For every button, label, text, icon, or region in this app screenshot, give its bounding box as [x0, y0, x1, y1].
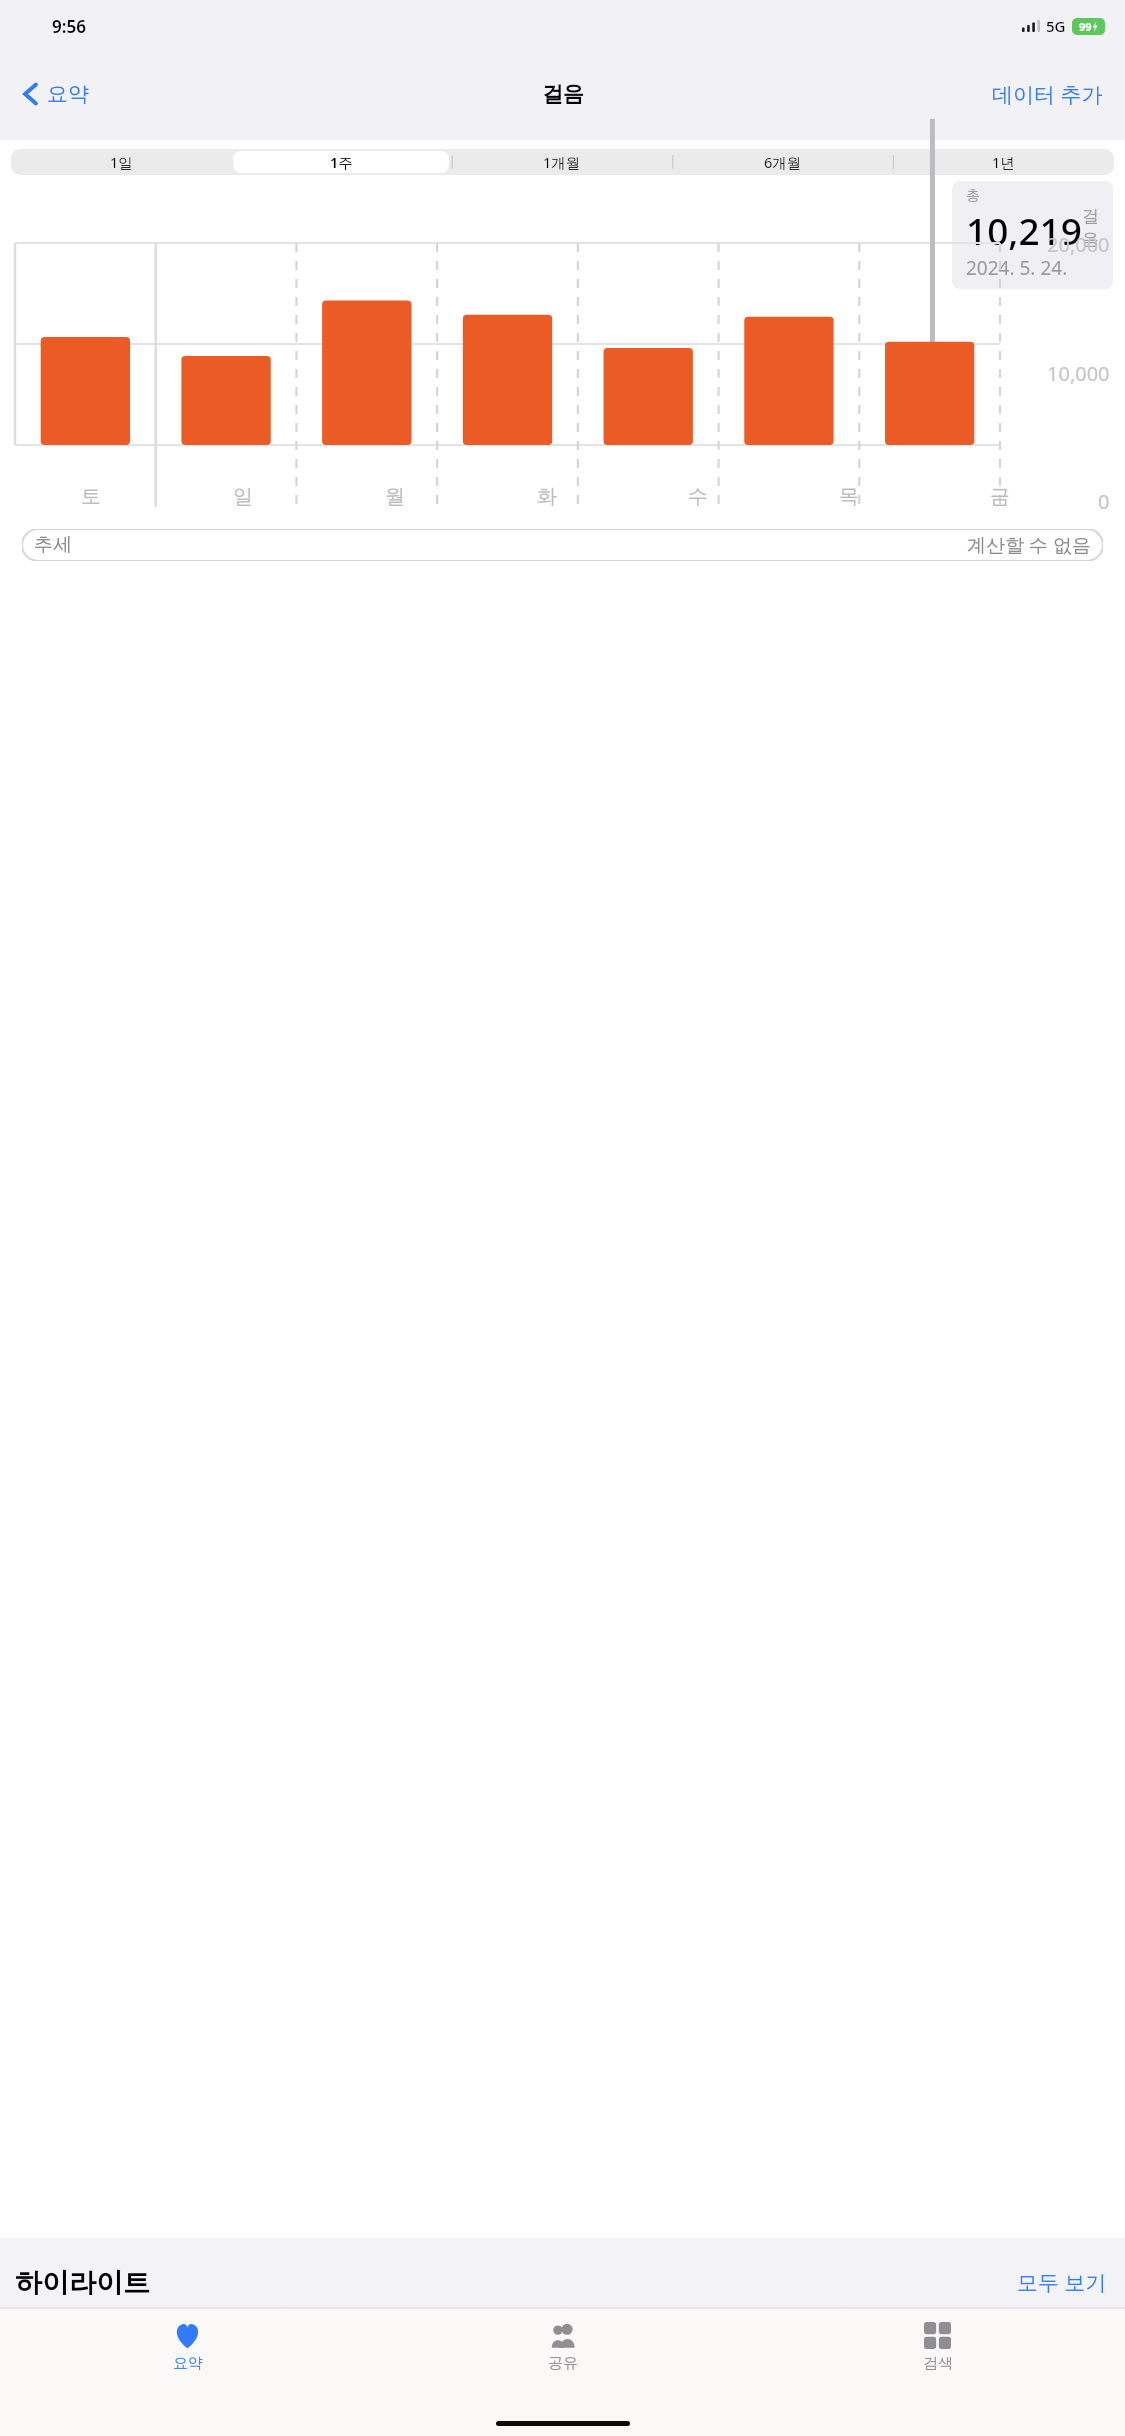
staticText: 금 — [990, 484, 1010, 509]
button[interactable]: 1년 — [895, 151, 1112, 173]
staticText: 계산할 수 없음 — [967, 532, 1091, 558]
staticText: 모두 보기 — [1017, 2268, 1107, 2297]
button[interactable]: 요약 — [18, 74, 93, 114]
staticText: 5G — [1046, 16, 1066, 36]
staticText: 요약 — [173, 2354, 203, 2373]
staticText: 총 — [966, 187, 980, 205]
staticText: 20,000 — [1047, 231, 1110, 258]
button[interactable]: 요약 — [0, 2309, 375, 2385]
button[interactable]: 공유 — [375, 2309, 750, 2385]
staticText: 1일 — [110, 152, 133, 172]
button[interactable]: 6개월 — [674, 151, 891, 173]
staticText: 1주 — [330, 152, 353, 172]
button[interactable]: 1주 — [233, 151, 449, 173]
staticText: 9:56 — [52, 15, 86, 38]
button[interactable]: 1개월 — [453, 151, 670, 173]
staticText: 월 — [385, 484, 405, 509]
staticText: 데이터 추가 — [992, 80, 1103, 109]
staticText: 10,219 — [966, 205, 1082, 255]
staticText: 0 — [1098, 488, 1110, 511]
button[interactable]: 모두 보기 — [1013, 2264, 1111, 2301]
staticText: 2024. 5. 24. — [966, 255, 1068, 281]
staticText: 99 — [1079, 19, 1092, 34]
staticText: 걸음 — [1082, 206, 1103, 250]
button[interactable]: 검색 — [750, 2309, 1125, 2385]
staticText: 하이라이트 — [15, 2266, 150, 2300]
staticText: 검색 — [923, 2354, 953, 2373]
staticText: 6개월 — [764, 152, 802, 172]
staticText: 공유 — [548, 2354, 578, 2373]
button[interactable]: 걸음 — [11, 2314, 1114, 2436]
button[interactable]: 1일 — [13, 151, 229, 173]
staticText: 토 — [81, 484, 101, 509]
staticText: 수 — [688, 484, 708, 509]
staticText: 10,000 — [1047, 360, 1110, 387]
staticText: 1개월 — [543, 152, 581, 172]
staticText: 요약 — [47, 81, 89, 107]
button[interactable]: 데이터 추가 — [988, 74, 1107, 115]
staticText: 목 — [839, 484, 859, 509]
staticText: 일 — [233, 484, 253, 509]
staticText: 화 — [537, 484, 557, 509]
staticText: 걸음 — [542, 81, 584, 107]
staticText: 1년 — [992, 152, 1015, 172]
staticText: 현재까지 걸음 수가 평소보다 늘었습니다. — [27, 2364, 504, 2400]
button[interactable]: 추세 — [22, 529, 1103, 561]
staticText: 추세 — [34, 533, 72, 557]
